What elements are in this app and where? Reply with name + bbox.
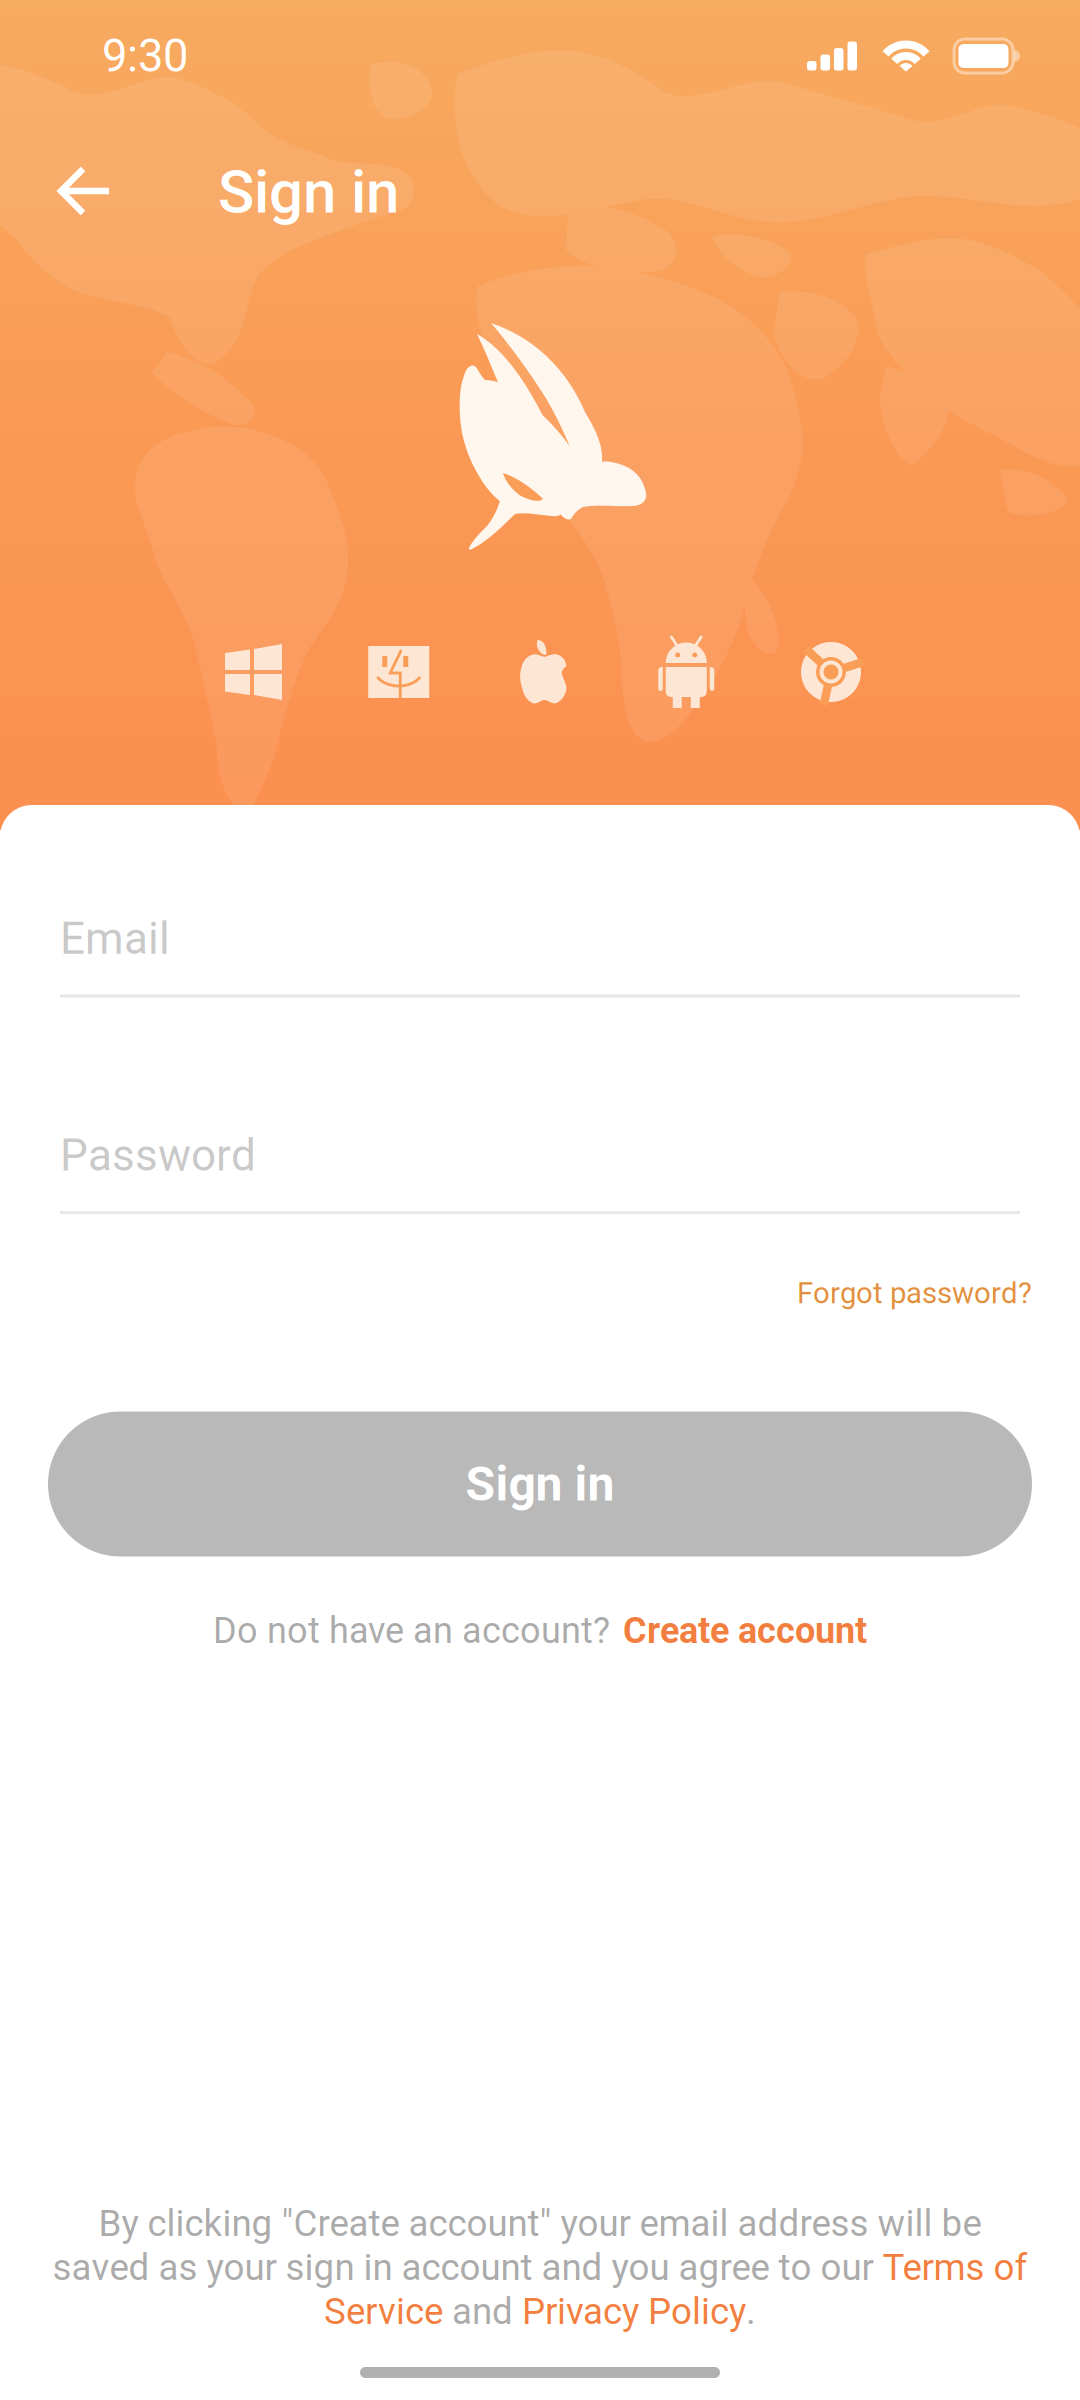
staticText: Terms of (882, 2246, 1027, 2289)
staticText: 9:30 (102, 29, 188, 82)
staticText: . (746, 2290, 756, 2333)
staticText: Email (60, 913, 170, 965)
staticText: Create account (623, 1609, 867, 1652)
staticText: Forgot password? (797, 1276, 1032, 1310)
button[interactable]: Back (30, 139, 140, 245)
button[interactable]: Do not have an account? (0, 1556, 1080, 1672)
staticText: Sign in (218, 157, 399, 227)
staticText: and (443, 2290, 522, 2333)
staticText: Password (60, 1130, 256, 1181)
staticText: Sign in (465, 1456, 614, 1512)
staticText: saved as your sign in account and you ag… (52, 2246, 882, 2289)
staticText: Do not have an account? (213, 1609, 610, 1652)
staticText: Privacy Policy (522, 2290, 746, 2333)
button[interactable]: Sign in (0, 1411, 1080, 1556)
staticText: Service (324, 2290, 443, 2333)
staticText: By clicking "Create account" your email … (98, 2202, 981, 2245)
button[interactable]: Forgot password? (0, 1214, 1080, 1326)
